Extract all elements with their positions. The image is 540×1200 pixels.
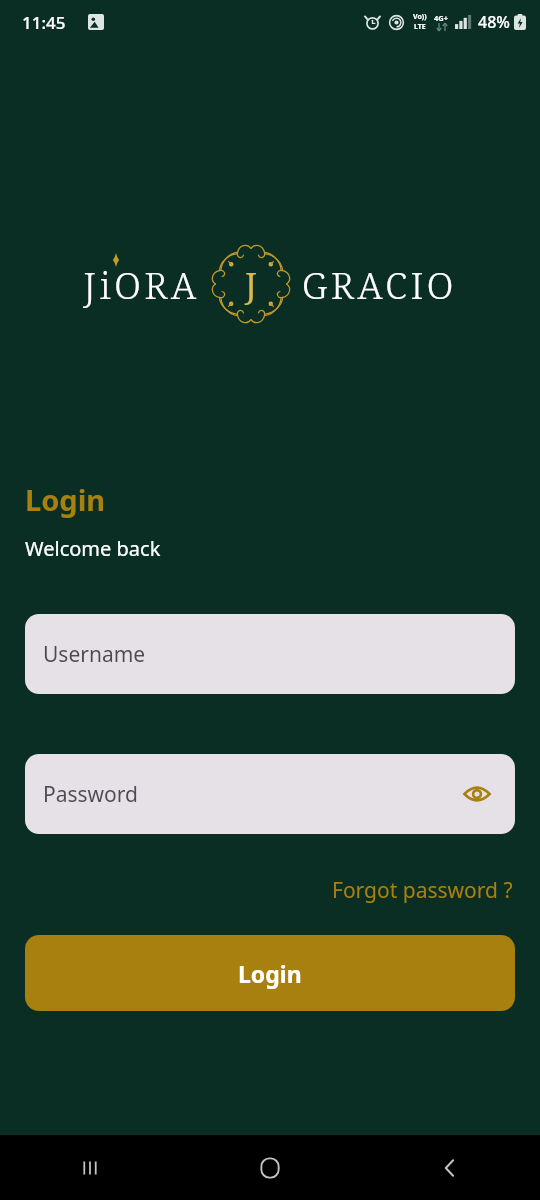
staticText: Vo)) [413,12,427,22]
staticText: Login [25,480,106,519]
button[interactable]: Show password [457,774,497,814]
staticText: 11:45 [22,11,66,34]
staticText: J [245,262,257,307]
staticText: LTE [414,22,426,32]
staticText: JiORA [83,259,200,309]
staticText: Login [238,958,302,989]
button[interactable]: Recent apps [0,1135,180,1200]
button[interactable]: Username [25,614,515,694]
staticText: Forgot password ? [332,876,513,905]
button[interactable]: Home [180,1135,360,1200]
button[interactable]: Password [25,754,515,834]
button[interactable]: Back [360,1135,540,1200]
staticText: 48% [478,11,510,33]
staticText: Password [43,780,138,809]
staticText: 4G+ [434,13,449,23]
button[interactable]: Forgot password ? [330,872,515,909]
button[interactable]: Login [25,935,515,1011]
staticText: Welcome back [25,535,161,562]
staticText: GRACIO [302,259,457,309]
staticText: Username [43,640,146,669]
